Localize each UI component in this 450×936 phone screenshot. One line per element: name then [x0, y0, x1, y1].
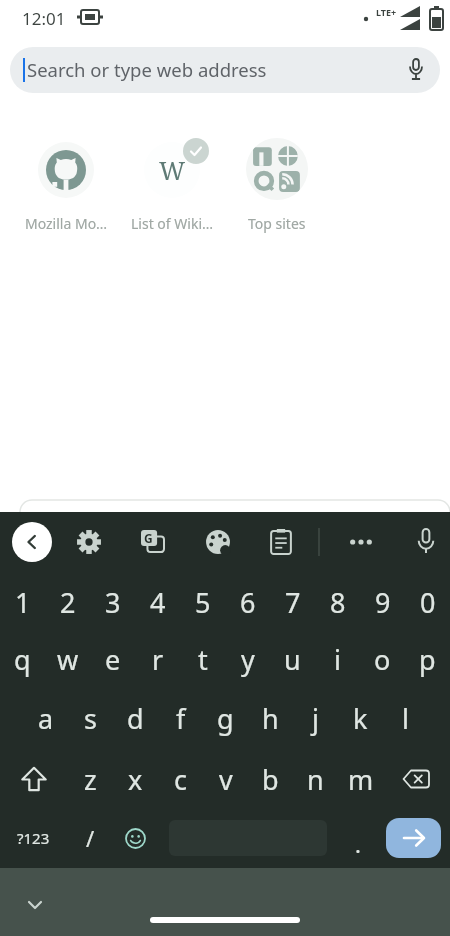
- staticText: /: [86, 823, 95, 853]
- staticText: o: [374, 641, 391, 678]
- button[interactable]: a: [23, 689, 68, 747]
- button[interactable]: 4: [135, 573, 180, 631]
- button[interactable]: 8: [315, 573, 360, 631]
- staticText: Top sites: [248, 214, 306, 233]
- button[interactable]: Top sites: [232, 126, 322, 236]
- staticText: y: [241, 641, 255, 678]
- staticText: W: [159, 153, 186, 187]
- button[interactable]: p: [405, 630, 450, 688]
- staticText: i: [334, 641, 341, 678]
- button[interactable]: 6: [225, 573, 270, 631]
- staticText: t: [198, 641, 208, 678]
- staticText: 9: [375, 584, 391, 621]
- button[interactable]: m: [338, 750, 383, 808]
- button[interactable]: 7: [270, 573, 315, 631]
- staticText: .: [355, 829, 361, 859]
- staticText: m: [348, 761, 374, 798]
- staticText: 7: [285, 584, 301, 621]
- button[interactable]: w: [45, 630, 90, 688]
- staticText: 8: [330, 584, 346, 621]
- button[interactable]: 0: [405, 573, 450, 631]
- button[interactable]: G: [141, 530, 164, 553]
- button[interactable]: g: [203, 689, 248, 747]
- button[interactable]: /: [68, 809, 113, 867]
- staticText: w: [57, 641, 79, 678]
- button[interactable]: [205, 529, 231, 555]
- button[interactable]: Mozilla Mo…: [21, 126, 111, 236]
- button[interactable]: s: [68, 689, 113, 747]
- button[interactable]: r: [135, 630, 180, 688]
- button[interactable]: c: [158, 750, 203, 808]
- staticText: v: [219, 761, 233, 798]
- button[interactable]: [76, 529, 102, 555]
- button[interactable]: o: [360, 630, 405, 688]
- button[interactable]: e: [90, 630, 135, 688]
- button[interactable]: ?123: [5, 809, 61, 867]
- staticText: G: [144, 530, 153, 546]
- button[interactable]: [150, 917, 300, 923]
- button[interactable]: q: [0, 630, 45, 688]
- button[interactable]: d: [113, 689, 158, 747]
- staticText: r: [152, 641, 164, 678]
- button[interactable]: n: [293, 750, 338, 808]
- staticText: l: [402, 700, 409, 737]
- button[interactable]: W: [127, 126, 217, 236]
- button[interactable]: [413, 528, 439, 554]
- button[interactable]: 1: [0, 573, 45, 631]
- staticText: j: [312, 700, 319, 737]
- button[interactable]: 5: [180, 573, 225, 631]
- staticText: n: [307, 761, 324, 798]
- staticText: q: [14, 641, 31, 678]
- staticText: u: [284, 641, 301, 678]
- button[interactable]: u: [270, 630, 315, 688]
- staticText: 12:01: [22, 7, 66, 30]
- staticText: 6: [240, 584, 256, 621]
- button[interactable]: [113, 809, 158, 867]
- staticText: d: [127, 700, 144, 737]
- button[interactable]: y: [225, 630, 270, 688]
- staticText: 0: [420, 584, 436, 621]
- staticText: h: [262, 700, 279, 737]
- button[interactable]: v: [203, 750, 248, 808]
- button[interactable]: [6, 750, 62, 808]
- staticText: p: [419, 641, 436, 678]
- staticText: c: [174, 761, 187, 798]
- button[interactable]: f: [158, 689, 203, 747]
- staticText: 3: [105, 584, 121, 621]
- button[interactable]: .: [335, 815, 380, 873]
- button[interactable]: t: [180, 630, 225, 688]
- button[interactable]: [18, 890, 52, 920]
- button[interactable]: z: [68, 750, 113, 808]
- button[interactable]: [12, 522, 52, 562]
- button[interactable]: i: [315, 630, 360, 688]
- button[interactable]: [268, 529, 294, 555]
- staticText: e: [105, 641, 121, 678]
- staticText: x: [128, 761, 143, 798]
- button[interactable]: k: [338, 689, 383, 747]
- button[interactable]: 3: [90, 573, 135, 631]
- button[interactable]: 9: [360, 573, 405, 631]
- button[interactable]: [388, 750, 444, 808]
- button[interactable]: 2: [45, 573, 90, 631]
- staticText: 5: [195, 584, 211, 621]
- button[interactable]: Search or type web address: [10, 47, 440, 93]
- staticText: ?123: [17, 828, 50, 848]
- staticText: z: [84, 761, 97, 798]
- staticText: List of Wiki…: [131, 214, 214, 233]
- staticText: g: [217, 700, 234, 737]
- staticText: s: [84, 700, 97, 737]
- button[interactable]: b: [248, 750, 293, 808]
- staticText: Mozilla Mo…: [25, 214, 108, 233]
- staticText: LTE+: [376, 6, 397, 18]
- staticText: 1: [15, 584, 31, 621]
- button[interactable]: l: [383, 689, 428, 747]
- staticText: k: [353, 700, 368, 737]
- button[interactable]: [386, 818, 441, 858]
- staticText: 4: [150, 584, 166, 621]
- button[interactable]: [348, 529, 374, 555]
- staticText: b: [262, 761, 279, 798]
- button[interactable]: j: [293, 689, 338, 747]
- button[interactable]: x: [113, 750, 158, 808]
- button[interactable]: h: [248, 689, 293, 747]
